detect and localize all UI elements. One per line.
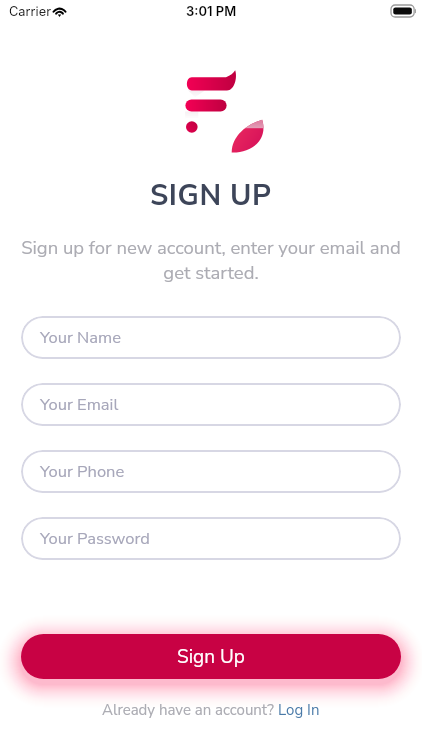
staticText: Already have an account?	[102, 700, 278, 720]
staticText: Carrier	[9, 4, 51, 19]
button[interactable]: Your Email	[21, 383, 401, 426]
button[interactable]: Your Password	[21, 517, 401, 560]
button[interactable]: Sign Up	[21, 634, 401, 679]
button[interactable]: Your Name	[21, 316, 401, 359]
button[interactable]: Log In	[278, 700, 320, 720]
staticText: Your Name	[40, 326, 121, 349]
staticText: Sign up for new account, enter your emai…	[16, 235, 406, 285]
staticText: SIGN UP	[150, 176, 272, 216]
other: Battery	[391, 5, 416, 17]
staticText: 3:01 PM	[186, 3, 237, 19]
button[interactable]: Your Phone	[21, 450, 401, 493]
staticText: Sign Up	[177, 644, 245, 670]
staticText: Your Email	[40, 393, 119, 416]
staticText: Your Password	[40, 527, 150, 550]
other: Wi-Fi signal	[52, 5, 67, 16]
staticText: Your Phone	[40, 460, 125, 483]
